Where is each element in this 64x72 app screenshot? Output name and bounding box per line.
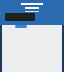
button[interactable] — [15, 25, 27, 28]
button[interactable] — [5, 13, 35, 21]
